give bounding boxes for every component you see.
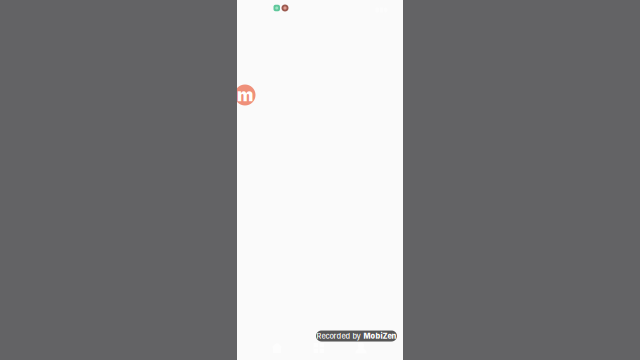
staticText: Recorded by <box>316 332 360 340</box>
staticText: m <box>237 84 253 105</box>
button[interactable]: Profile <box>234 84 255 105</box>
button[interactable]: Browse <box>298 339 340 357</box>
staticText: MobiZen <box>363 332 396 340</box>
button[interactable]: Account <box>340 339 382 357</box>
